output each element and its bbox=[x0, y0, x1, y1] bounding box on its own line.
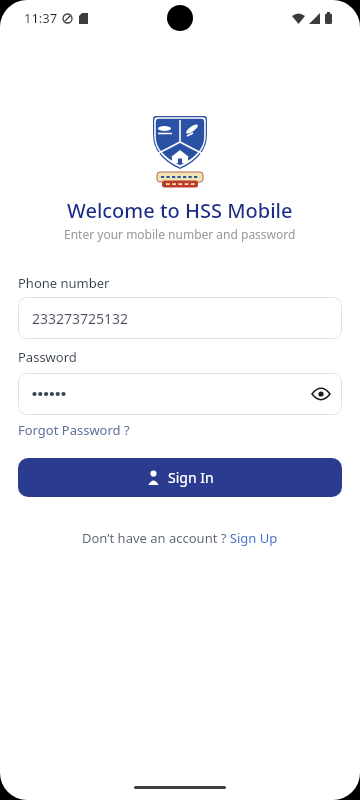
staticText: Welcome to HSS Mobile bbox=[67, 197, 293, 224]
button[interactable] bbox=[309, 382, 333, 406]
button[interactable]: Don’t have an account ? Sign Up bbox=[82, 529, 278, 547]
button[interactable]: 233273725132 bbox=[18, 297, 342, 339]
button[interactable]: Forgot Password ? bbox=[18, 421, 130, 439]
staticText: Password bbox=[18, 348, 77, 366]
button[interactable] bbox=[18, 373, 342, 415]
staticText: Enter your mobile number and password bbox=[64, 226, 296, 242]
staticText: 11:37 bbox=[24, 9, 58, 27]
staticText: Phone number bbox=[18, 274, 110, 292]
staticText: 233273725132 bbox=[32, 309, 129, 328]
staticText: Sign In bbox=[168, 468, 214, 487]
button[interactable]: Sign In bbox=[18, 458, 342, 497]
